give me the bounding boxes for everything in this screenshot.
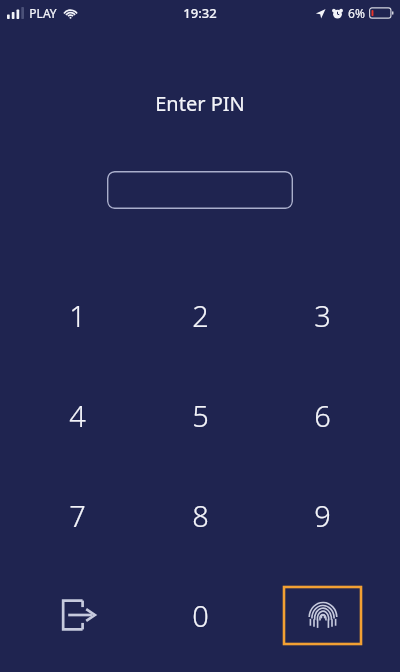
staticText: 5: [192, 396, 209, 435]
button[interactable]: 9: [267, 469, 377, 561]
button[interactable]: 0: [145, 569, 255, 661]
staticText: 4: [69, 396, 86, 435]
staticText: 2: [192, 296, 209, 335]
staticText: 3: [314, 296, 331, 335]
button[interactable]: [107, 171, 293, 209]
button[interactable]: 2: [145, 269, 255, 361]
button[interactable]: 1: [22, 269, 132, 361]
button[interactable]: 5: [145, 369, 255, 461]
staticText: 6%: [348, 5, 365, 21]
button[interactable]: 4: [22, 369, 132, 461]
staticText: Enter PIN: [155, 90, 245, 117]
staticText: PLAY: [29, 5, 57, 21]
button[interactable]: Log out: [22, 569, 132, 661]
staticText: 0: [192, 596, 209, 635]
staticText: 7: [69, 496, 86, 535]
button[interactable]: 8: [145, 469, 255, 561]
staticText: 19:32: [183, 4, 217, 22]
button[interactable]: 7: [22, 469, 132, 561]
staticText: 8: [192, 496, 209, 535]
button[interactable]: 3: [267, 269, 377, 361]
button[interactable]: Unlock with fingerprint: [284, 587, 361, 644]
staticText: 6: [314, 396, 331, 435]
button[interactable]: 6: [267, 369, 377, 461]
staticText: 9: [314, 496, 331, 535]
staticText: 1: [69, 296, 86, 335]
